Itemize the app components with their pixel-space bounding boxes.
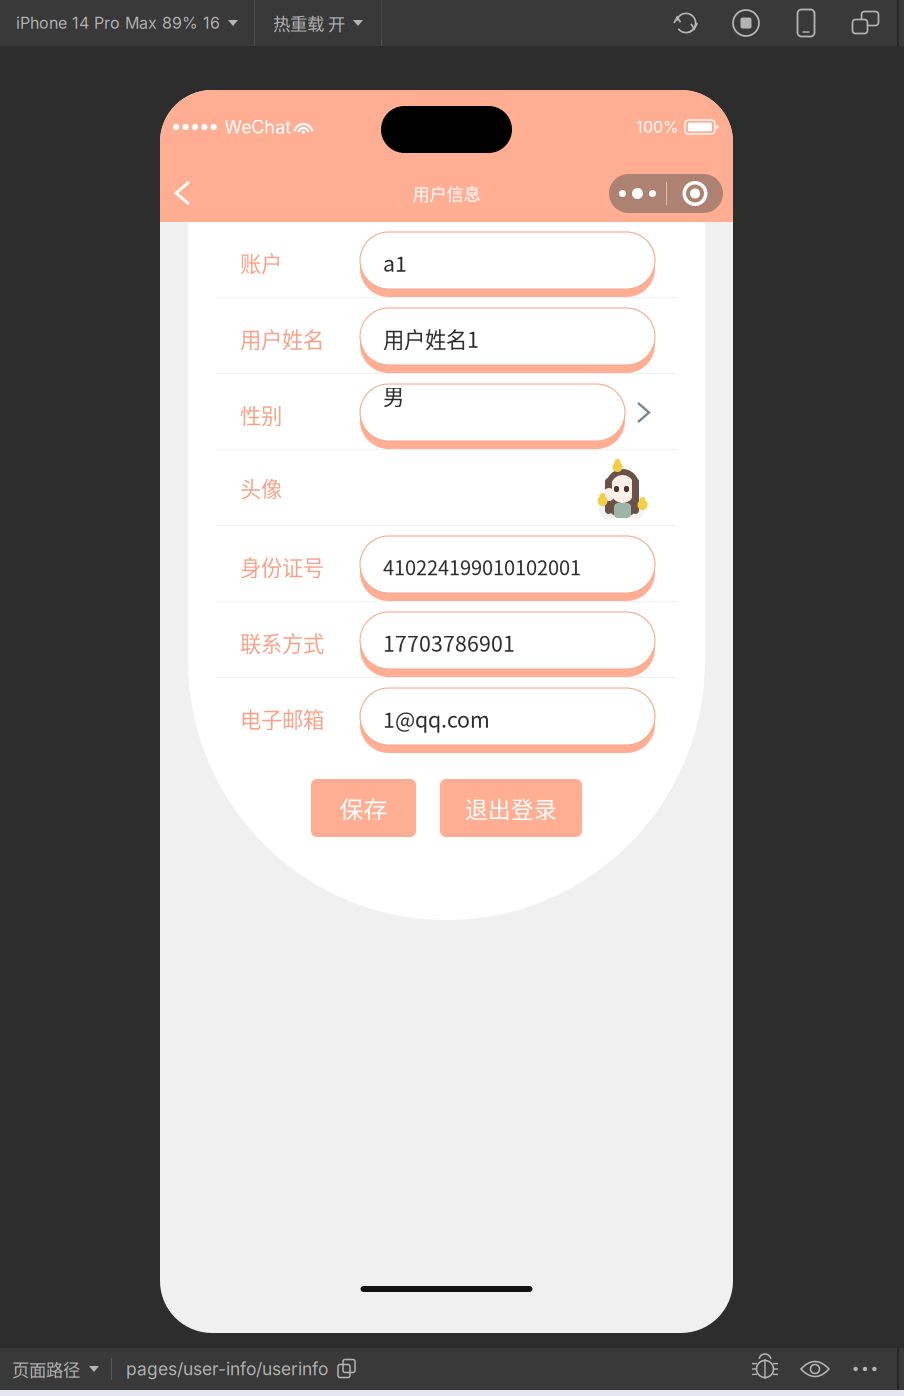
button[interactable]: Windows <box>836 0 896 46</box>
staticText: 页面路径 <box>12 1356 80 1382</box>
button[interactable]: 热重载 开 <box>255 0 381 46</box>
staticText: 用户姓名 <box>240 323 324 354</box>
staticText: 电子邮箱 <box>240 703 324 734</box>
button[interactable]: Stop <box>716 0 776 46</box>
button[interactable]: Preview <box>790 1348 840 1390</box>
staticText: 男 <box>383 380 404 411</box>
button[interactable]: Close <box>667 174 723 213</box>
staticText: a1 <box>383 247 407 278</box>
staticText: 身份证号 <box>240 551 324 582</box>
staticText: 100% <box>636 117 679 137</box>
button[interactable]: Debug <box>740 1348 790 1390</box>
button[interactable]: Device <box>776 0 836 46</box>
button[interactable]: 保存 <box>311 779 416 837</box>
button[interactable]: More <box>840 1348 890 1390</box>
staticText: 保存 <box>339 791 387 825</box>
staticText: 头像 <box>240 473 282 503</box>
button[interactable]: 退出登录 <box>440 779 582 837</box>
staticText: 410224199010102001 <box>383 552 581 581</box>
button[interactable]: iPhone 14 Pro Max 89% 16 <box>0 0 254 46</box>
staticText: 联系方式 <box>240 627 324 658</box>
staticText: iPhone 14 Pro Max 89% 16 <box>16 13 220 33</box>
button[interactable]: 页面路径 <box>0 1348 111 1390</box>
button[interactable]: Refresh <box>656 0 716 46</box>
button[interactable]: Back <box>162 164 203 222</box>
staticText: 用户姓名1 <box>383 323 479 354</box>
staticText: pages/user-info/userinfo <box>126 1358 328 1379</box>
staticText: 热重载 开 <box>273 10 345 36</box>
staticText: 账户 <box>240 247 282 278</box>
button[interactable]: pages/user-info/userinfo <box>112 1348 371 1390</box>
staticText: 性别 <box>240 399 282 430</box>
staticText: 用户信息 <box>412 180 480 206</box>
staticText: 17703786901 <box>383 627 515 658</box>
staticText: 1@qq.com <box>383 703 490 734</box>
staticText: 退出登录 <box>465 792 557 824</box>
button[interactable]: Menu <box>609 174 666 213</box>
staticText: WeChat <box>224 116 291 138</box>
